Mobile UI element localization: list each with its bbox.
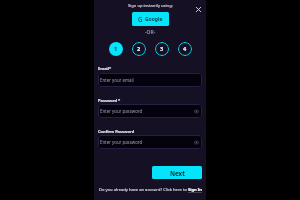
other: Show password [194,109,199,114]
staticText: G [138,15,143,23]
staticText: -OR- [145,29,156,36]
staticText: 1 [114,45,118,53]
button[interactable]: Close [194,5,203,14]
other: Show password [194,140,199,145]
button[interactable]: 4 [178,42,192,56]
button[interactable]: 2 [132,42,146,56]
button[interactable]: Enter your password [98,135,202,149]
staticText: 4 [183,45,187,53]
button[interactable]: Enter your email [98,73,202,87]
button[interactable]: 3 [155,42,169,56]
staticText: Enter your password [100,139,143,145]
staticText: Sign up instantly using: [128,3,173,9]
button[interactable]: 1 [109,42,123,56]
staticText: Enter your email [100,77,134,83]
staticText: Next [170,169,185,177]
button[interactable]: Do you already have an account? Click he… [99,187,202,193]
staticText: Enter your password [100,108,143,114]
staticText: Confirm Password [98,129,135,134]
staticText: Password * [98,98,121,103]
staticText: 3 [160,45,164,53]
button[interactable]: G [132,12,169,26]
button[interactable]: Next [152,166,202,179]
staticText: Email* [98,66,112,71]
staticText: 2 [137,45,141,53]
staticText: Google [145,16,163,23]
button[interactable]: Enter your password [98,104,202,118]
